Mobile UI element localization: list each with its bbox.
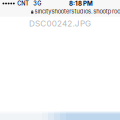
staticText: DSC00242.JPG [29,19,91,28]
staticText: 3G [33,0,41,7]
staticText: CNT [17,0,29,7]
staticText: 8:18 PM [69,0,93,7]
button[interactable]: sincityshooterstudios.shootproof.com [0,7,120,16]
staticText: sincityshooterstudios.shootproof.com [35,8,120,15]
